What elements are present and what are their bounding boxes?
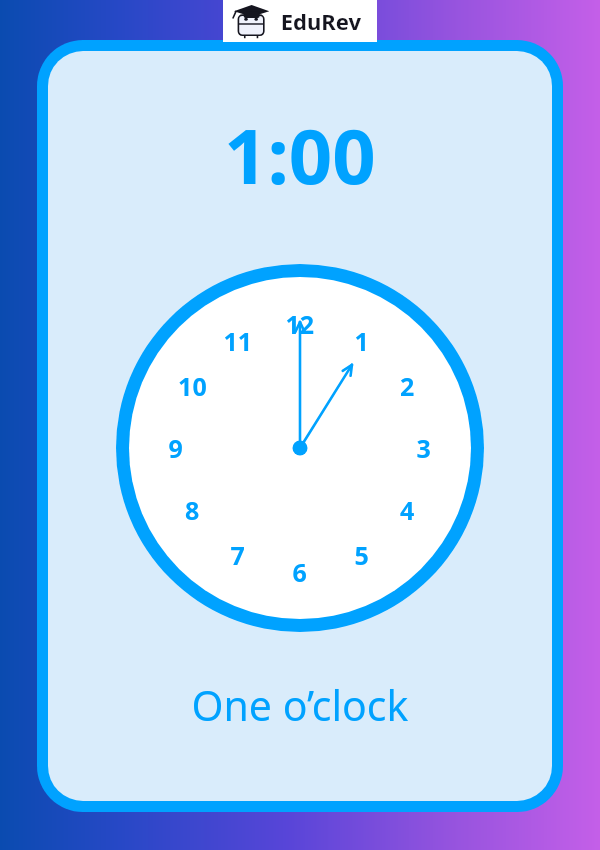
button[interactable] xyxy=(0,0,600,850)
button[interactable]: EduRev logo xyxy=(223,0,377,42)
